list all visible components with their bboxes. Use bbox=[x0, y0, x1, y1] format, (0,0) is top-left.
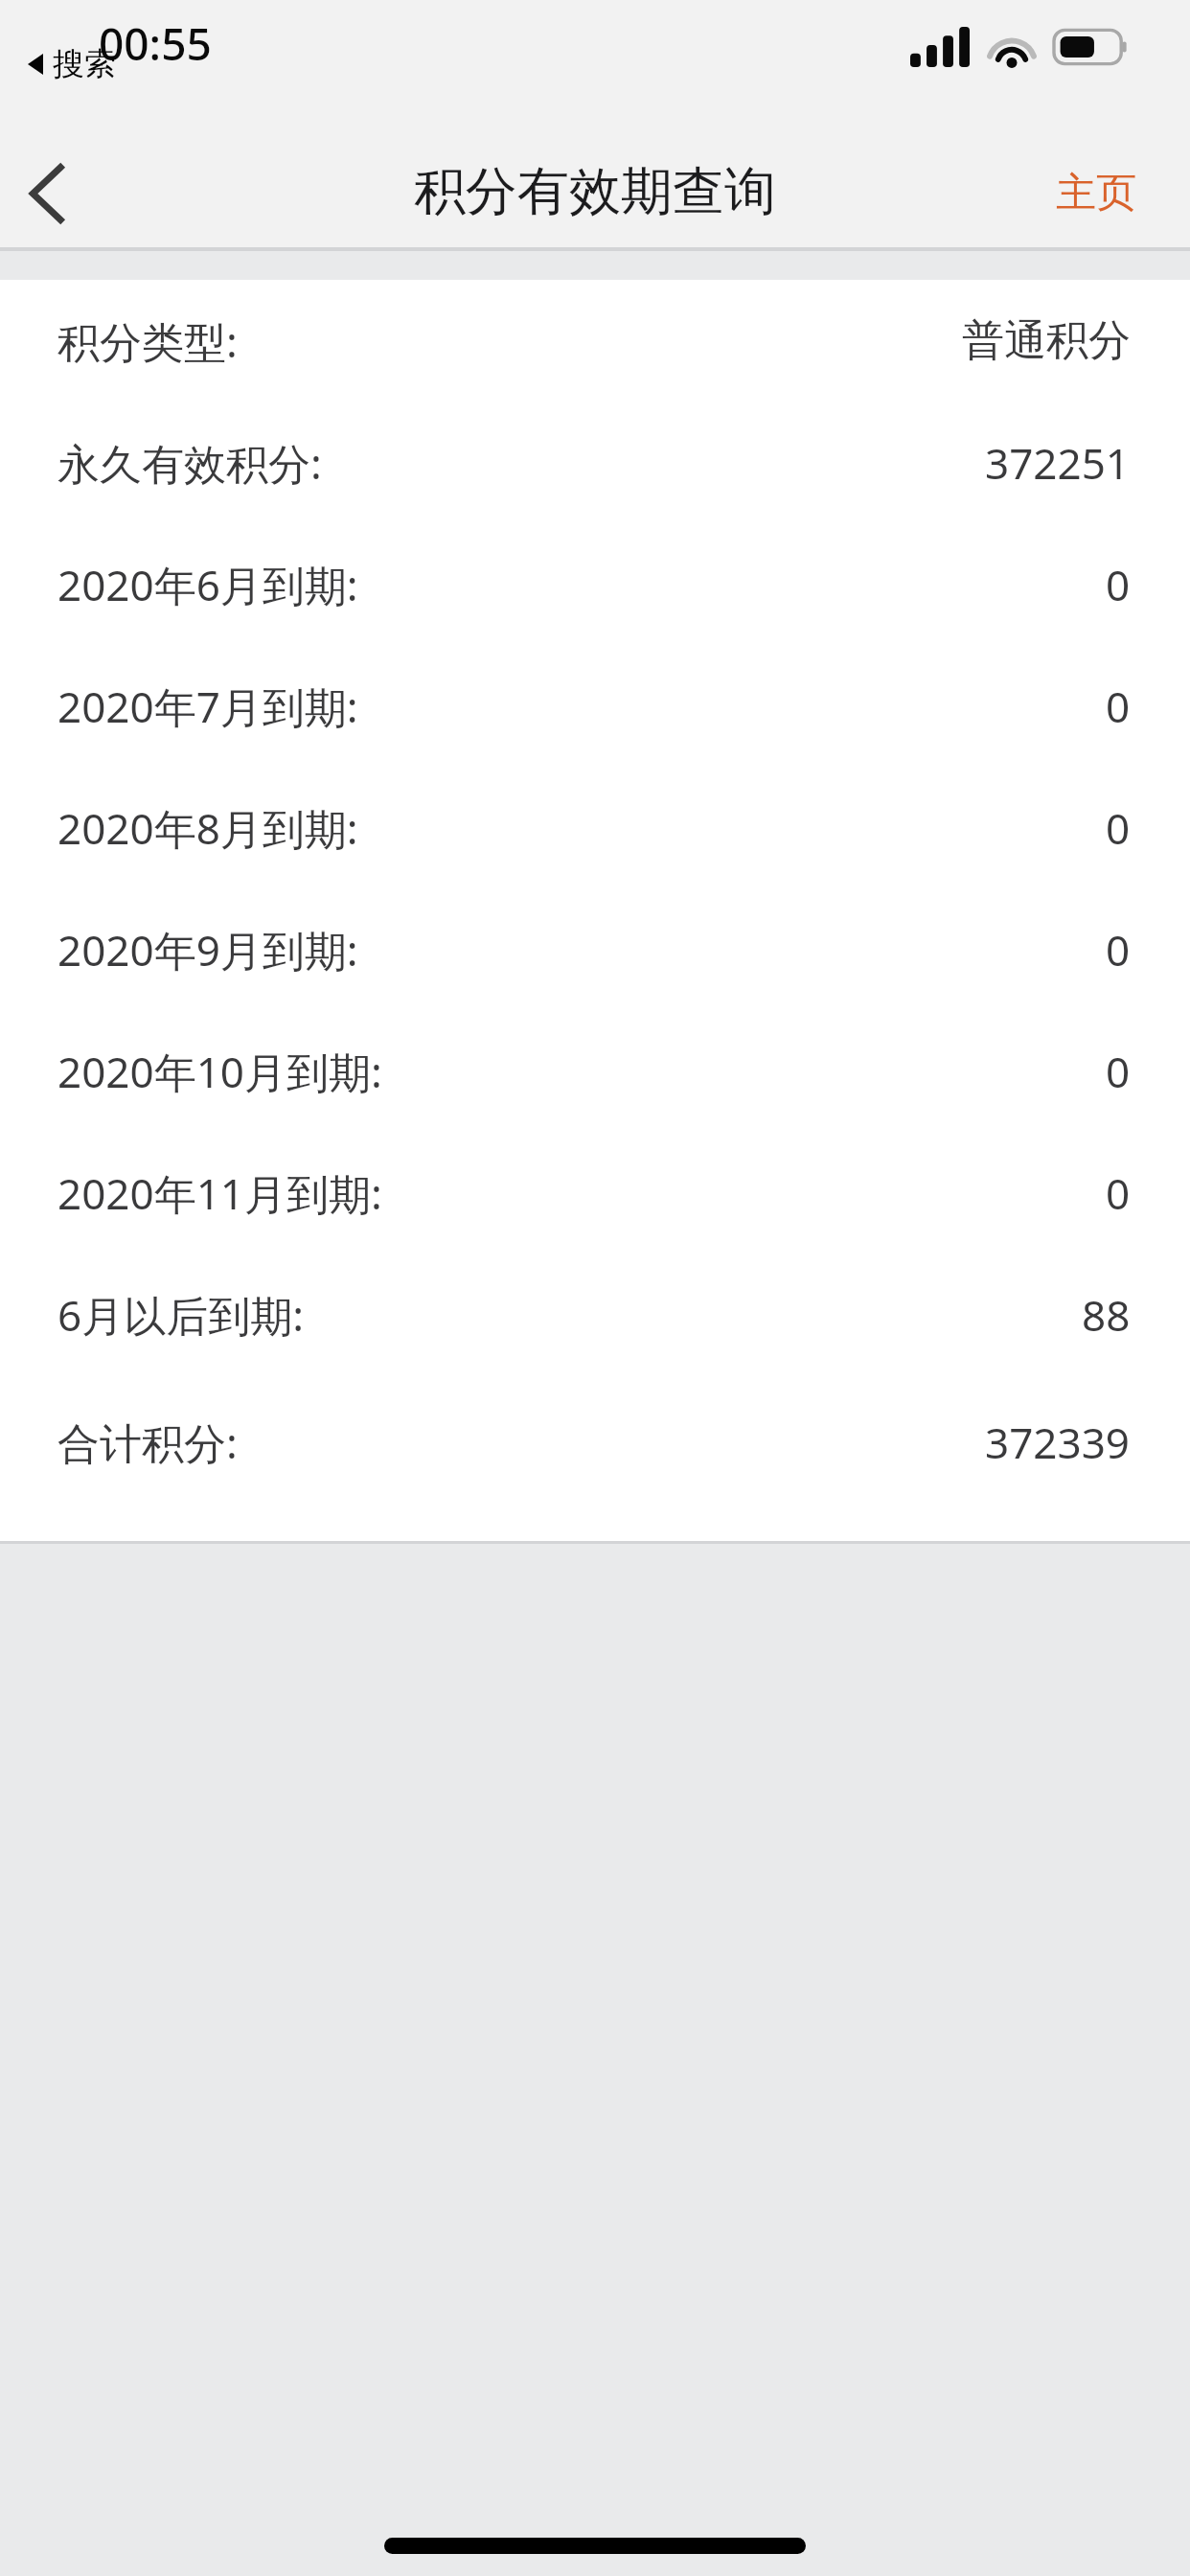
button[interactable]: 合计积分: bbox=[0, 1375, 1190, 1508]
button[interactable]: 2020年7月到期: bbox=[0, 645, 1190, 767]
staticText: 2020年6月到期: bbox=[57, 556, 358, 613]
staticText: 2020年9月到期: bbox=[57, 921, 358, 978]
staticText: 0 bbox=[1106, 556, 1131, 613]
staticText: 00:55 bbox=[99, 13, 212, 74]
staticText: 积分类型: bbox=[57, 312, 238, 370]
button[interactable]: 2020年8月到期: bbox=[0, 767, 1190, 888]
staticText: 搜索 bbox=[53, 44, 116, 84]
button[interactable]: 6月以后到期: bbox=[0, 1253, 1190, 1375]
button[interactable]: 2020年9月到期: bbox=[0, 888, 1190, 1010]
button[interactable]: 2020年6月到期: bbox=[0, 523, 1190, 645]
button[interactable]: 积分类型: bbox=[0, 280, 1190, 402]
staticText: 合计积分: bbox=[57, 1414, 238, 1471]
staticText: 372339 bbox=[985, 1414, 1131, 1471]
staticText: 0 bbox=[1106, 678, 1131, 735]
staticText: 0 bbox=[1106, 921, 1131, 978]
staticText: 主页 bbox=[1056, 168, 1136, 218]
staticText: 2020年8月到期: bbox=[57, 799, 358, 857]
staticText: 永久有效积分: bbox=[57, 434, 322, 492]
button[interactable]: 返回 bbox=[0, 139, 92, 247]
staticText: 0 bbox=[1106, 1043, 1131, 1100]
staticText: 0 bbox=[1106, 799, 1131, 857]
button[interactable]: 主页 bbox=[1002, 139, 1190, 247]
button[interactable]: 2020年10月到期: bbox=[0, 1010, 1190, 1132]
staticText: 0 bbox=[1106, 1164, 1131, 1222]
button[interactable]: 搜索 bbox=[25, 44, 118, 84]
staticText: 2020年10月到期: bbox=[57, 1043, 382, 1100]
staticText: 2020年7月到期: bbox=[57, 678, 358, 735]
button[interactable]: 永久有效积分: bbox=[0, 402, 1190, 523]
staticText: 积分有效期查询 bbox=[414, 159, 776, 224]
button[interactable]: 2020年11月到期: bbox=[0, 1132, 1190, 1253]
staticText: 普通积分 bbox=[962, 314, 1131, 367]
staticText: 6月以后到期: bbox=[57, 1286, 304, 1344]
staticText: 372251 bbox=[985, 434, 1131, 492]
staticText: 2020年11月到期: bbox=[57, 1164, 382, 1222]
staticText: 88 bbox=[1082, 1286, 1131, 1344]
